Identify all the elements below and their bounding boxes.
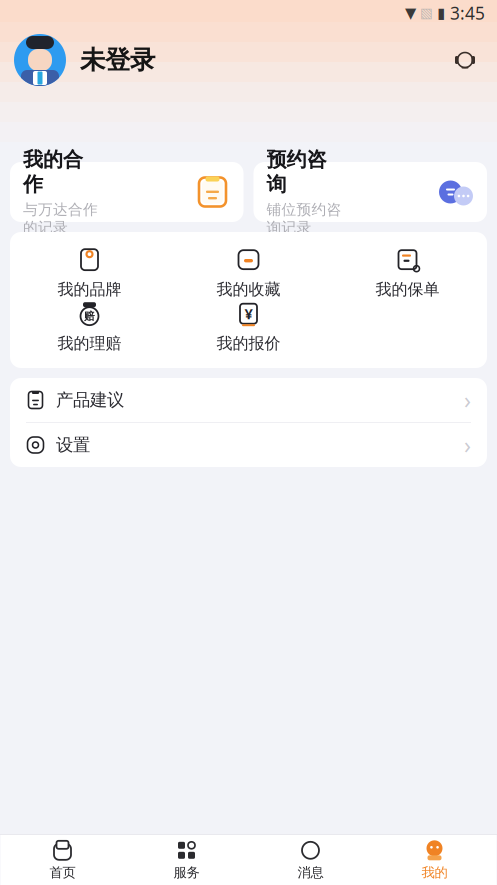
staticText: 消息 — [297, 864, 323, 881]
button[interactable]: 客服 — [445, 40, 485, 80]
staticText: ▼ — [405, 5, 416, 21]
staticText: 我的 — [421, 864, 447, 881]
staticText: 设置 — [56, 434, 90, 456]
staticText: 我的品牌 — [57, 280, 121, 299]
button[interactable]: 设置 — [10, 423, 487, 467]
button[interactable]: 我的合作 — [10, 162, 243, 222]
staticText: › — [464, 385, 471, 415]
staticText: 我的保单 — [375, 280, 439, 299]
button[interactable]: 服务 — [124, 835, 248, 885]
staticText: 铺位预约咨询记录 — [266, 200, 341, 236]
staticText: 3:45 — [445, 1, 485, 24]
staticText: ▧ — [416, 5, 437, 20]
button[interactable]: 首页 — [0, 835, 124, 885]
button[interactable]: 我的 — [372, 835, 496, 885]
button[interactable]: ¥ — [169, 300, 328, 354]
button[interactable]: 我的品牌 — [10, 246, 169, 300]
staticText: 未登录 — [80, 44, 155, 75]
staticText: 我的报价 — [216, 334, 280, 353]
button[interactable]: 消息 — [248, 835, 372, 885]
button[interactable]: 预约咨询 — [253, 162, 487, 222]
staticText: 与万达合作的记录 — [23, 200, 98, 236]
button[interactable]: 产品建议 — [10, 378, 487, 422]
staticText: ▮ — [437, 5, 445, 21]
button[interactable]: 未登录 — [14, 34, 155, 86]
staticText: 我的合作 — [23, 147, 83, 196]
button[interactable]: 赔 — [10, 300, 169, 354]
staticText: ¥ — [244, 304, 252, 323]
staticText: 服务 — [173, 864, 199, 881]
staticText: › — [464, 430, 471, 460]
staticText: 我的理赔 — [57, 334, 121, 353]
button[interactable]: 我的保单 — [328, 246, 487, 300]
staticText: 我的收藏 — [216, 280, 280, 299]
staticText: 首页 — [49, 864, 75, 881]
staticText: 预约咨询 — [266, 147, 326, 196]
staticText: 产品建议 — [56, 389, 124, 411]
staticText: 赔 — [84, 310, 95, 323]
button[interactable]: 我的收藏 — [169, 246, 328, 300]
